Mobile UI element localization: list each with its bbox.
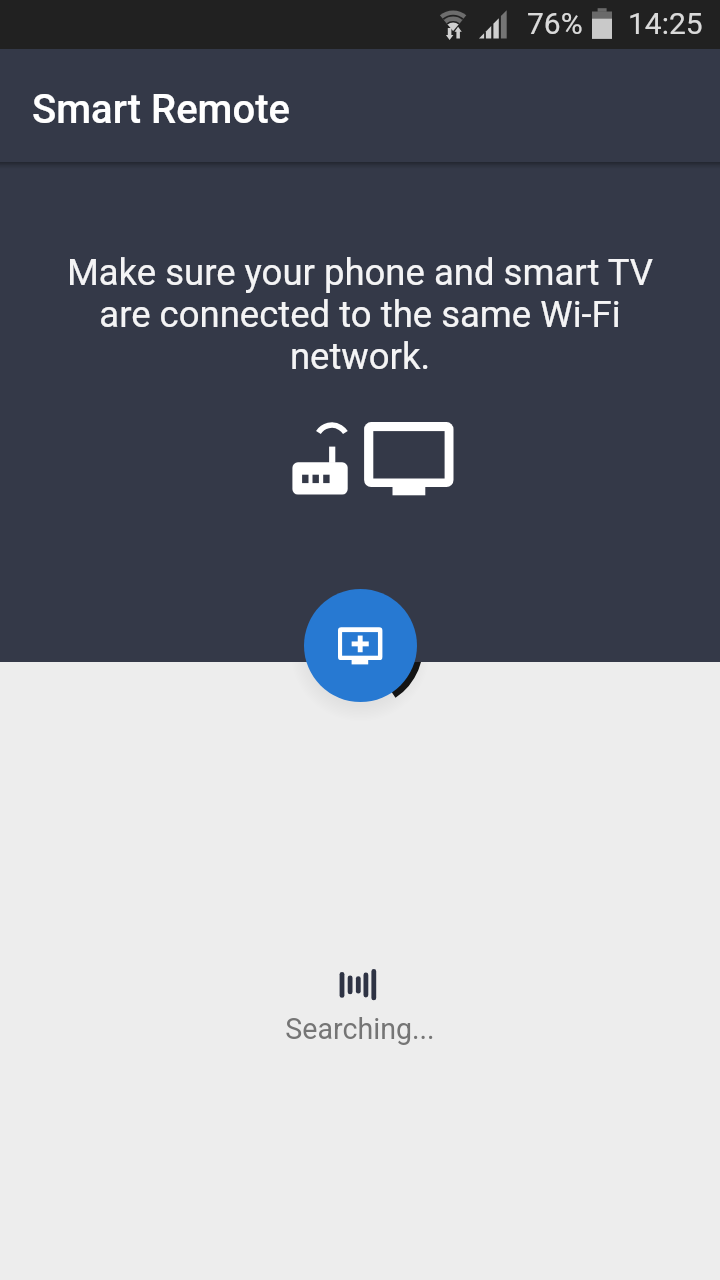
staticText: Searching... [0, 1012, 720, 1046]
staticText: 76% [527, 6, 583, 41]
staticText: 14:25 [628, 6, 703, 41]
button[interactable]: Add device [304, 589, 417, 702]
staticText: Smart Remote [32, 86, 290, 133]
staticText: Make sure your phone and smart TV are co… [58, 251, 662, 378]
button[interactable]: Smart Remote [0, 49, 720, 162]
